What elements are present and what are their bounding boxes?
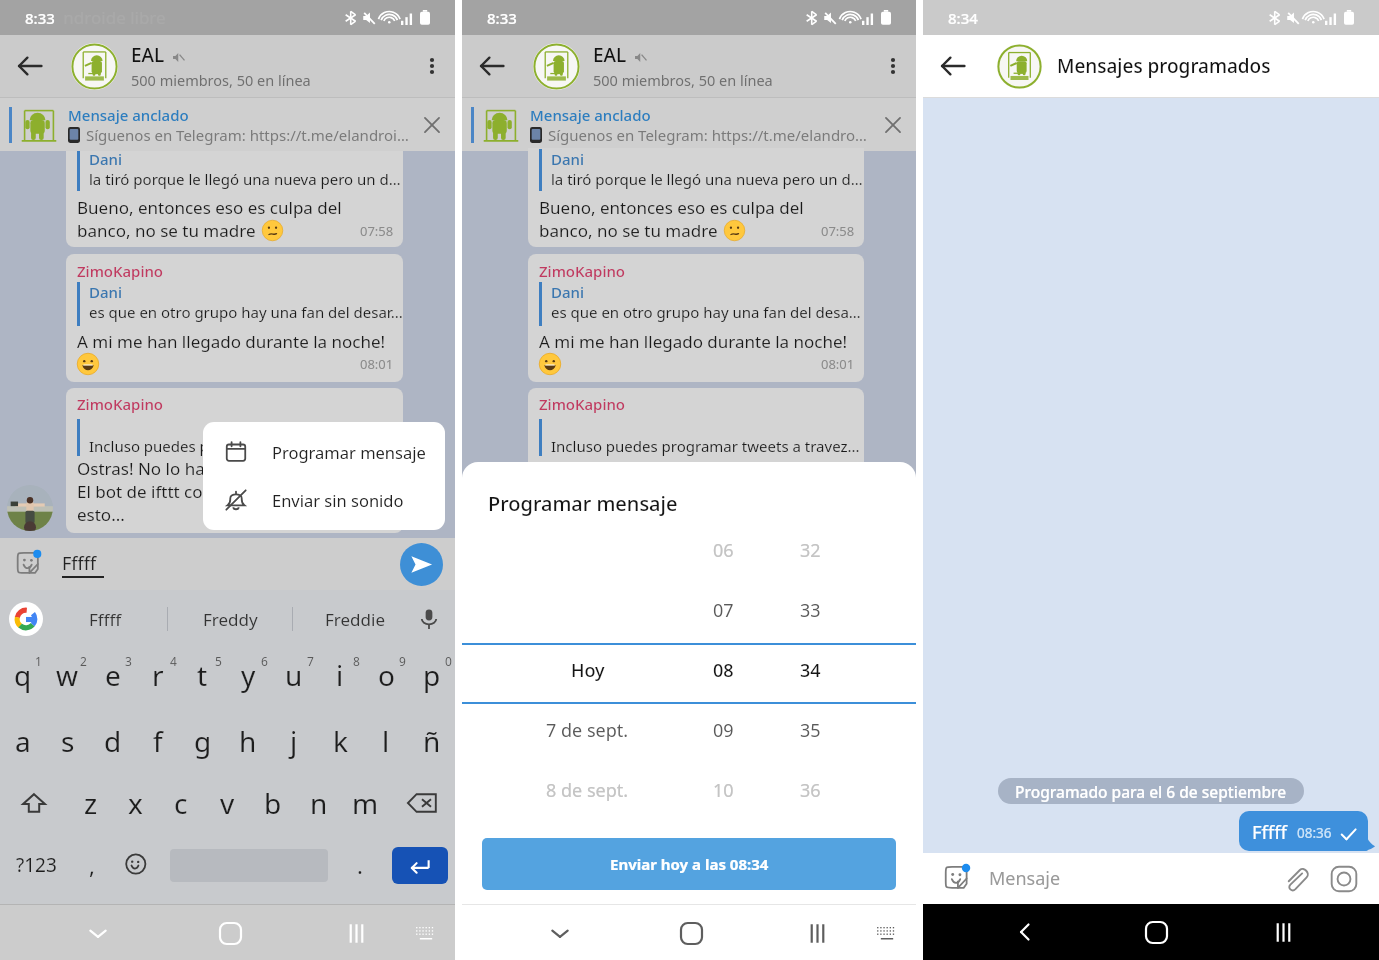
staticText: v — [220, 784, 235, 822]
staticText: n — [310, 784, 328, 822]
button[interactable]: d — [90, 710, 135, 772]
button[interactable]: n — [296, 772, 342, 834]
staticText: 6 — [261, 653, 268, 669]
button[interactable]: l — [363, 710, 409, 772]
staticText: El bot de ifttt co — [77, 480, 203, 503]
button[interactable]: Fffff — [1239, 811, 1368, 851]
button[interactable]: Back — [462, 35, 524, 97]
button[interactable]: Send — [400, 543, 443, 586]
staticText: 500 miembros, 50 en línea — [593, 70, 773, 90]
staticText: d — [104, 722, 122, 760]
button[interactable]: ZimoKapino — [66, 388, 403, 533]
staticText: Fffff — [89, 608, 122, 631]
button[interactable]: m — [342, 772, 388, 834]
button[interactable]: 9 — [363, 648, 409, 710]
button[interactable]: Recents — [795, 911, 839, 955]
button[interactable]: ZimoKapino — [528, 388, 864, 496]
staticText: u — [285, 656, 303, 694]
button[interactable]: 0 — [409, 648, 455, 710]
button[interactable]: 5 — [180, 648, 225, 710]
button[interactable]: h — [225, 710, 271, 772]
button[interactable]: Home — [669, 911, 713, 955]
button[interactable]: 8 — [317, 648, 363, 710]
staticText: f — [153, 722, 163, 760]
button[interactable]: Programar mensaje — [203, 428, 445, 476]
staticText: 8 — [353, 653, 360, 669]
button[interactable]: 6 — [225, 648, 271, 710]
staticText: 35 — [800, 718, 821, 743]
button[interactable]: Hide keyboard — [538, 911, 582, 955]
staticText: 1 — [35, 653, 42, 669]
staticText: r — [152, 656, 164, 694]
staticText: i — [336, 656, 344, 694]
staticText: 8:33 — [487, 8, 517, 28]
button[interactable]: c — [158, 772, 204, 834]
button[interactable]: Space — [162, 834, 336, 896]
staticText: banco, no se tu madre — [77, 219, 256, 242]
button[interactable]: Enter — [392, 847, 448, 884]
staticText: Dani — [551, 282, 585, 302]
button[interactable]: Recents — [1261, 910, 1305, 954]
button[interactable]: . — [336, 834, 384, 896]
button[interactable]: g — [180, 710, 225, 772]
button[interactable]: Keyboard — [404, 911, 448, 955]
staticText: 10 — [713, 778, 734, 803]
button[interactable]: x — [113, 772, 158, 834]
button[interactable]: Enviar sin sonido — [203, 476, 445, 524]
button[interactable]: Shift — [0, 772, 68, 834]
button[interactable]: Attach — [1275, 858, 1317, 900]
staticText: Dani — [89, 151, 123, 169]
button[interactable]: a — [0, 710, 45, 772]
button[interactable]: Emoji — [112, 834, 162, 896]
button[interactable]: Keyboard — [865, 911, 909, 955]
button[interactable]: Close pinned message — [870, 102, 916, 148]
button[interactable]: More options — [409, 43, 455, 89]
button[interactable]: ZimoKapino — [66, 254, 403, 382]
button[interactable]: b — [250, 772, 296, 834]
button[interactable]: ZimoKapino — [528, 254, 864, 382]
button[interactable]: Home — [1134, 910, 1178, 954]
button[interactable]: Back — [1003, 910, 1047, 954]
staticText: 4 — [170, 653, 177, 669]
button[interactable]: Dani — [528, 148, 864, 247]
button[interactable]: Back — [923, 35, 985, 97]
button[interactable]: s — [45, 710, 90, 772]
button[interactable]: 4 — [135, 648, 180, 710]
button[interactable]: k — [317, 710, 363, 772]
staticText: Incluso puedes p — [89, 436, 209, 456]
button[interactable]: Camera — [1323, 858, 1365, 900]
button[interactable]: 7 — [271, 648, 317, 710]
button[interactable]: Backspace — [388, 772, 455, 834]
staticText: Síguenos en Telegram: https://t.me/eland… — [548, 125, 870, 145]
staticText: t — [197, 656, 208, 694]
staticText: Síguenos en Telegram: https://t.me/eland… — [86, 125, 409, 145]
button[interactable]: Dani — [66, 151, 403, 247]
staticText: 0 — [445, 653, 452, 669]
staticText: EAL — [593, 42, 627, 68]
button[interactable]: f — [135, 710, 180, 772]
button[interactable]: Recents — [334, 911, 378, 955]
button[interactable]: More options — [870, 43, 916, 89]
button[interactable]: v — [204, 772, 250, 834]
button[interactable]: 1 — [0, 648, 45, 710]
staticText: . — [357, 850, 363, 880]
staticText: Freddie — [325, 608, 385, 631]
button[interactable]: , — [72, 834, 112, 896]
button[interactable]: Hide keyboard — [76, 911, 120, 955]
button[interactable]: Back — [0, 35, 62, 97]
button[interactable]: Close pinned message — [409, 102, 455, 148]
button[interactable]: 3 — [90, 648, 135, 710]
button[interactable]: ?123 — [0, 834, 72, 896]
button[interactable]: ñ — [409, 710, 455, 772]
staticText: Mensaje — [989, 866, 1061, 891]
staticText: p — [423, 656, 441, 694]
staticText: 7 — [307, 653, 314, 669]
button[interactable]: j — [271, 710, 317, 772]
staticText: 36 — [800, 778, 821, 803]
staticText: a — [15, 722, 31, 760]
button[interactable]: Home — [208, 911, 252, 955]
button[interactable]: 2 — [45, 648, 90, 710]
button[interactable]: Enviar hoy a las 08:34 — [482, 838, 896, 890]
staticText: 06 — [713, 538, 734, 563]
button[interactable]: z — [68, 772, 113, 834]
